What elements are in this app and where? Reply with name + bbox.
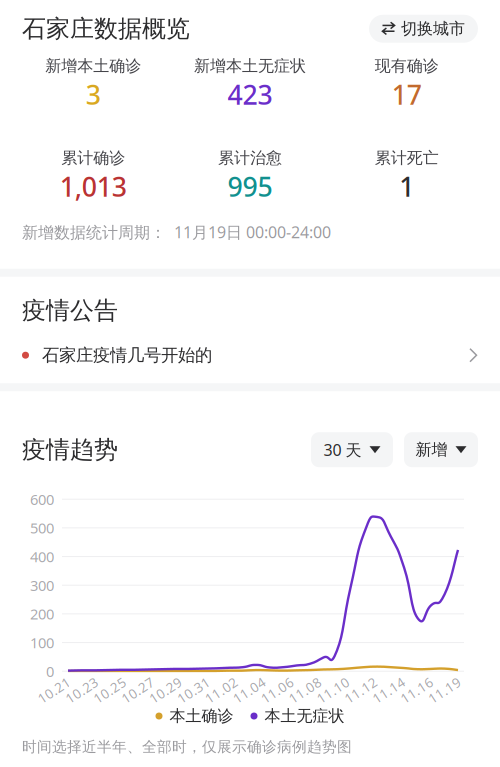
staticText: 11.12 — [343, 681, 379, 699]
staticText: 时间选择近半年、全部时，仅展示确诊病例趋势图 — [22, 738, 352, 756]
staticText: 500 — [30, 518, 54, 538]
staticText: 新增 — [415, 440, 447, 460]
staticText: 17 — [392, 77, 422, 112]
button[interactable]: 新增 — [404, 432, 478, 467]
staticText: 3 — [86, 77, 101, 112]
staticText: 11.04 — [231, 681, 267, 699]
staticText: 新增本土无症状 — [194, 56, 306, 76]
staticText: 新增本土确诊 — [45, 56, 141, 76]
staticText: 11.06 — [259, 681, 295, 699]
staticText: 1,013 — [60, 169, 127, 204]
staticText: 10.31 — [175, 681, 211, 699]
staticText: 疫情趋势 — [22, 435, 118, 464]
staticText: 11.16 — [399, 681, 435, 699]
staticText: 11.10 — [315, 681, 351, 699]
staticText: 0 — [46, 661, 54, 681]
staticText: 11.02 — [203, 681, 239, 699]
staticText: 11.14 — [371, 681, 407, 699]
staticText: 累计确诊 — [61, 148, 125, 168]
button[interactable]: 30 天 — [311, 432, 393, 467]
staticText: 本土确诊 — [169, 706, 233, 726]
staticText: 100 — [30, 633, 54, 652]
staticText: 累计死亡 — [375, 148, 439, 168]
staticText: 1 — [399, 169, 414, 204]
staticText: 11.08 — [287, 681, 323, 699]
staticText: 995 — [227, 169, 272, 204]
staticText: 石家庄疫情几号开始的 — [42, 345, 212, 366]
staticText: 10.23 — [64, 681, 100, 699]
staticText: 423 — [227, 77, 272, 112]
staticText: 10.27 — [120, 681, 156, 699]
staticText: 200 — [30, 604, 54, 624]
staticText: 疫情公告 — [22, 296, 118, 325]
staticText: 累计治愈 — [218, 148, 282, 168]
staticText: 切换城市 — [401, 19, 465, 39]
staticText: 30 天 — [323, 439, 361, 460]
staticText: 11.19 — [427, 681, 463, 699]
staticText: 300 — [30, 575, 54, 595]
staticText: 10.21 — [36, 681, 72, 699]
button[interactable]: 石家庄疫情几号开始的 — [0, 333, 500, 377]
staticText: 新增数据统计周期： 11月19日 00:00-24:00 — [22, 221, 331, 243]
staticText: 600 — [30, 489, 54, 509]
staticText: 石家庄数据概览 — [22, 14, 190, 43]
staticText: 400 — [30, 547, 54, 566]
staticText: 10.25 — [92, 681, 128, 699]
staticText: 本土无症状 — [264, 706, 344, 726]
staticText: 现有确诊 — [375, 56, 439, 76]
button[interactable]: 切换城市 — [369, 15, 478, 43]
staticText: 10.29 — [148, 681, 184, 699]
